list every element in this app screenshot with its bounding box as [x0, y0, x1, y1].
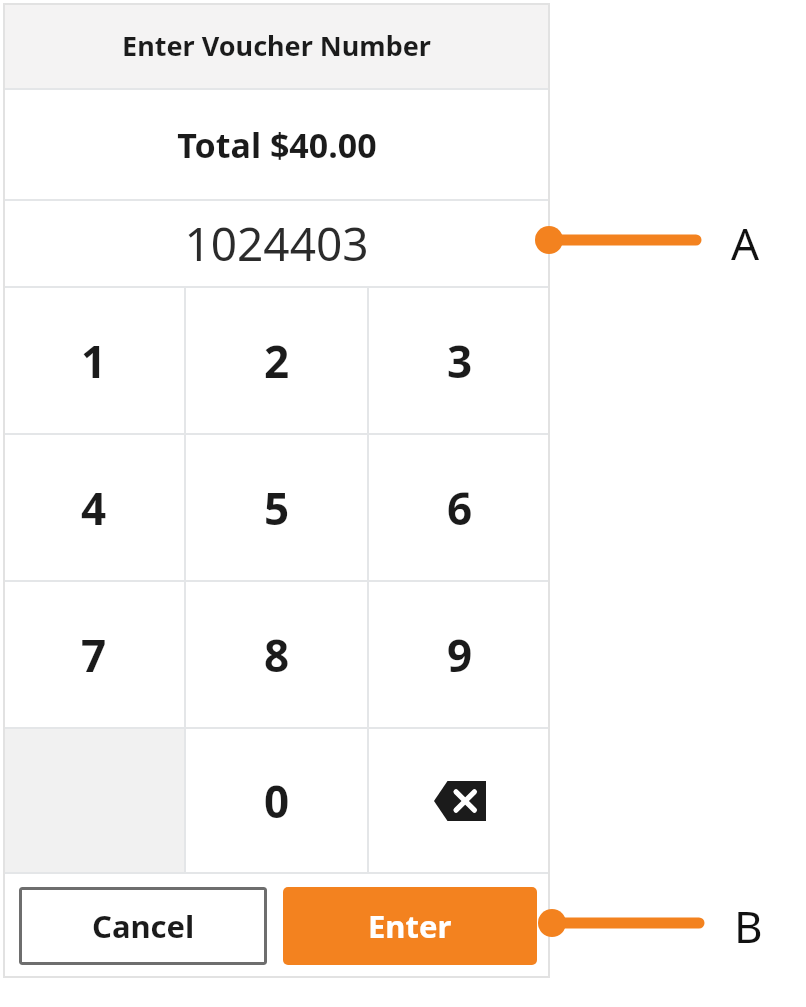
- button[interactable]: 0: [186, 729, 367, 872]
- staticText: 2: [264, 331, 290, 391]
- staticText: 1024403: [184, 212, 369, 275]
- button[interactable]: 5: [186, 435, 367, 580]
- staticText: 5: [264, 478, 290, 538]
- staticText: A: [731, 213, 760, 273]
- button[interactable]: 8: [186, 582, 367, 727]
- staticText: 3: [447, 331, 473, 391]
- button[interactable]: Backspace: [369, 729, 550, 872]
- staticText: 6: [447, 478, 473, 538]
- button[interactable]: Enter: [283, 887, 537, 965]
- button[interactable]: 7: [3, 582, 184, 727]
- staticText: 7: [81, 625, 107, 685]
- staticText: 8: [264, 625, 290, 685]
- button[interactable]: 9: [369, 582, 550, 727]
- staticText: Enter: [368, 905, 452, 947]
- button[interactable]: 2: [186, 288, 367, 433]
- staticText: Total $40.00: [177, 122, 377, 168]
- staticText: 9: [447, 625, 473, 685]
- button[interactable]: 1: [3, 288, 184, 433]
- button[interactable]: Cancel: [19, 887, 267, 965]
- button[interactable]: 3: [369, 288, 550, 433]
- staticText: Cancel: [92, 905, 195, 947]
- staticText: B: [734, 896, 763, 956]
- staticText: 0: [264, 771, 290, 831]
- staticText: 1: [81, 331, 107, 391]
- button[interactable]: 4: [3, 435, 184, 580]
- staticText: 4: [81, 478, 107, 538]
- button[interactable]: 6: [369, 435, 550, 580]
- staticText: Enter Voucher Number: [122, 27, 431, 64]
